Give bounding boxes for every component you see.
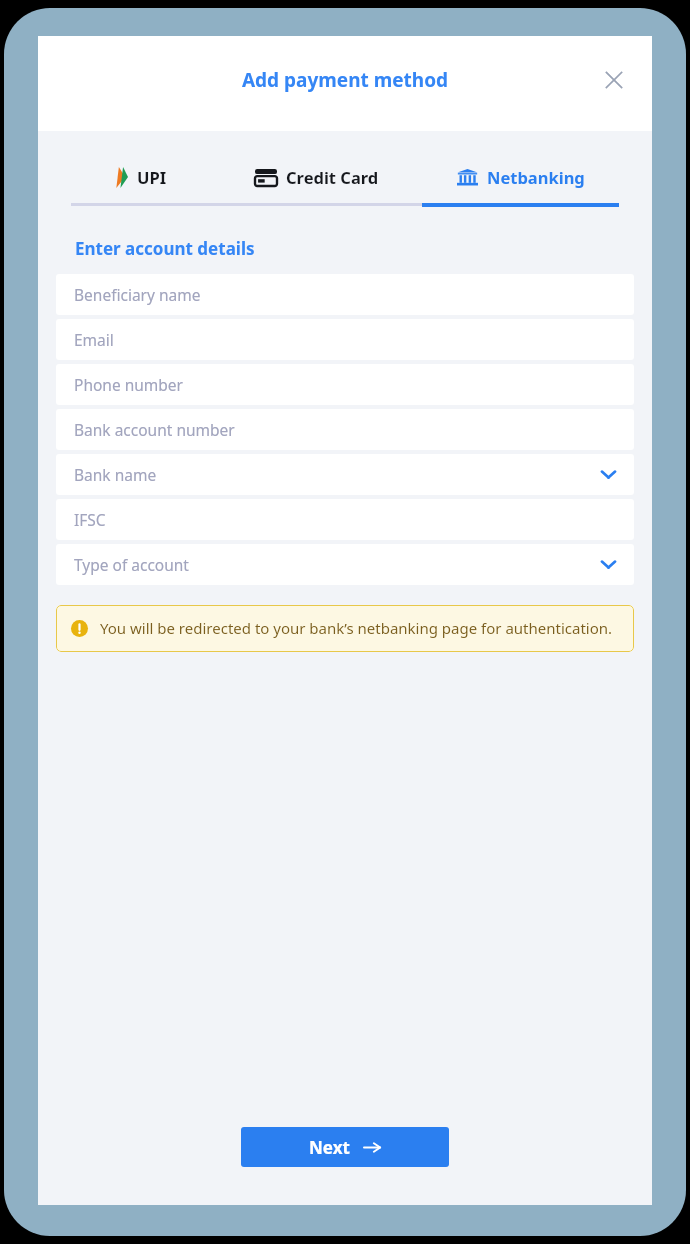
button[interactable]: IFSC — [56, 499, 634, 540]
staticText: Email — [74, 329, 616, 350]
button[interactable]: Bank account number — [56, 409, 634, 450]
button[interactable]: Bank name — [56, 454, 634, 495]
staticText: Enter account details — [75, 237, 255, 260]
button[interactable]: Beneficiary name — [56, 274, 634, 315]
staticText: IFSC — [74, 509, 616, 530]
staticText: UPI — [137, 166, 167, 188]
button[interactable]: Netbanking — [422, 159, 619, 195]
staticText: Bank name — [74, 464, 601, 485]
staticText: Phone number — [74, 374, 616, 395]
button[interactable]: Close — [594, 60, 634, 100]
staticText: You will be redirected to your bank’s ne… — [100, 618, 613, 638]
staticText: Type of account — [74, 554, 601, 575]
staticText: Add payment method — [38, 67, 652, 93]
staticText: Netbanking — [487, 166, 585, 188]
button[interactable]: Phone number — [56, 364, 634, 405]
staticText: Next — [309, 1136, 350, 1159]
button[interactable]: Type of account — [56, 544, 634, 585]
button[interactable]: UPI — [71, 159, 211, 195]
button[interactable]: Next — [241, 1127, 449, 1167]
staticText: Bank account number — [74, 419, 616, 440]
button[interactable]: Credit Card — [211, 159, 422, 195]
staticText: Beneficiary name — [74, 284, 616, 305]
button[interactable]: Email — [56, 319, 634, 360]
staticText: Credit Card — [286, 166, 379, 188]
